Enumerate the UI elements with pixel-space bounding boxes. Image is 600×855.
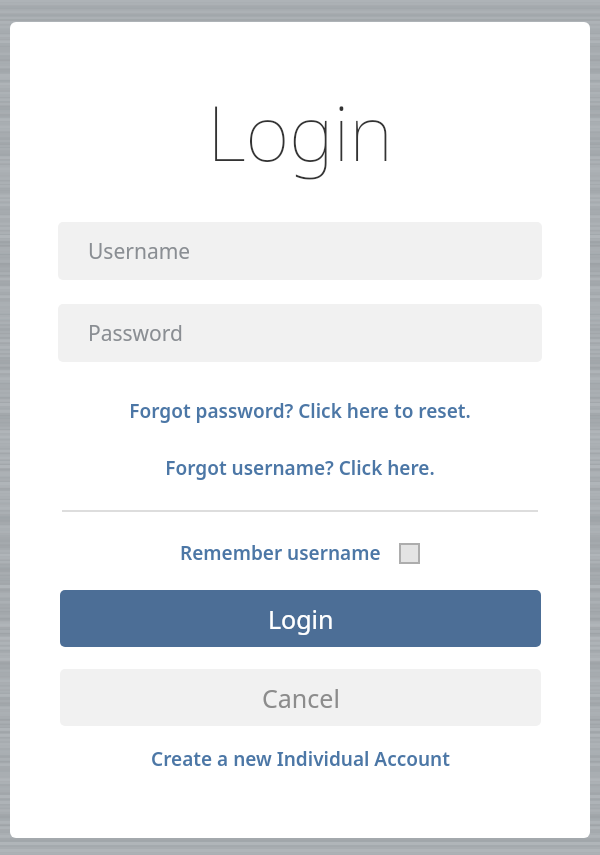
staticText: Login bbox=[10, 80, 590, 184]
staticText: Create a new Individual Account bbox=[151, 746, 450, 772]
staticText: Password bbox=[88, 319, 183, 348]
button[interactable]: Login bbox=[60, 590, 541, 647]
staticText: Username bbox=[88, 237, 191, 266]
button[interactable]: Remember username bbox=[174, 536, 426, 570]
button[interactable]: Username bbox=[58, 222, 542, 280]
staticText: Remember username bbox=[180, 540, 381, 566]
staticText: Login bbox=[268, 602, 334, 636]
staticText: Forgot username? Click here. bbox=[165, 455, 435, 481]
button[interactable]: Forgot username? Click here. bbox=[157, 452, 443, 484]
staticText: Forgot password? Click here to reset. bbox=[129, 398, 471, 424]
button[interactable]: Forgot password? Click here to reset. bbox=[121, 395, 479, 427]
button[interactable]: Password bbox=[58, 304, 542, 362]
staticText: Cancel bbox=[262, 681, 340, 715]
button[interactable]: Cancel bbox=[60, 669, 541, 726]
button[interactable]: Create a new Individual Account bbox=[143, 743, 458, 775]
